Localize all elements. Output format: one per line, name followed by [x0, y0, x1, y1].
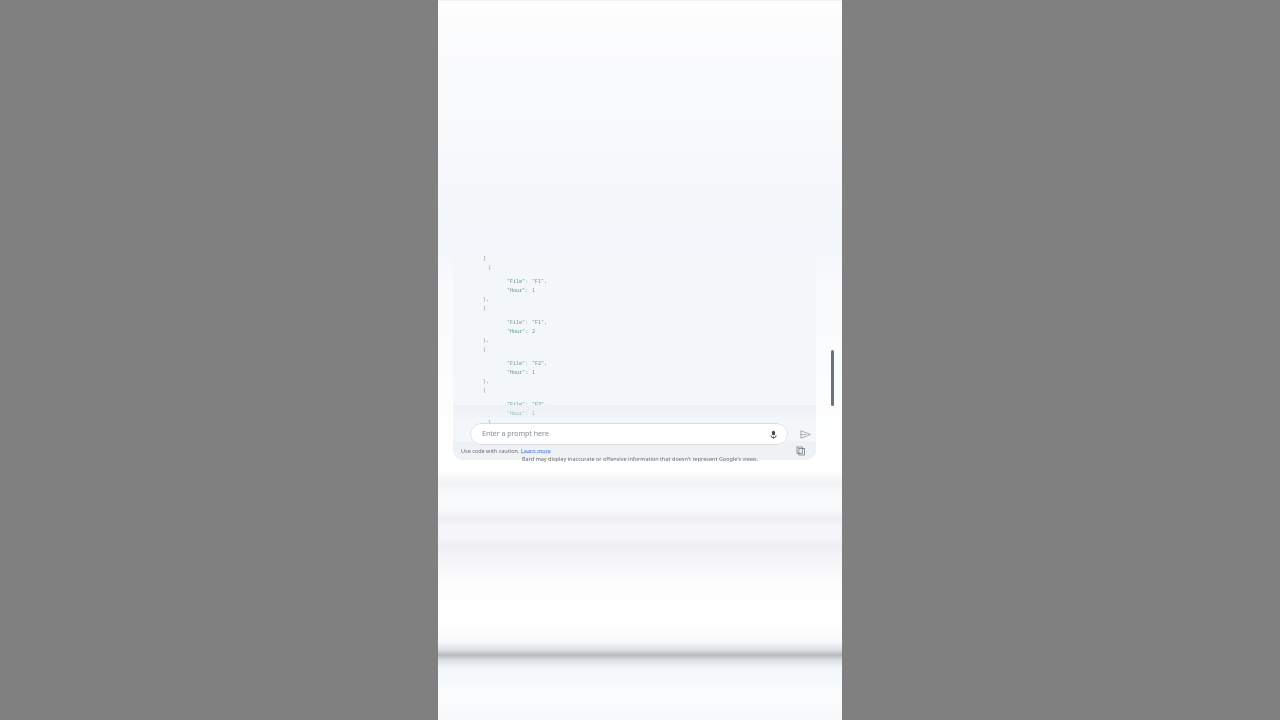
- staticText: "File":: [507, 401, 532, 408]
- button[interactable]: [: [453, 250, 816, 460]
- staticText: {: [483, 387, 487, 394]
- staticText: Learn more: [521, 447, 551, 454]
- staticText: 1: [532, 287, 536, 294]
- staticText: {: [483, 346, 487, 353]
- button[interactable]: Enter a prompt here: [470, 423, 788, 445]
- staticText: "Hour":: [507, 287, 532, 294]
- staticText: Enter a prompt here: [482, 429, 549, 439]
- button[interactable]: Learn more: [521, 447, 551, 454]
- staticText: 1: [532, 410, 536, 417]
- staticText: },: [483, 337, 490, 344]
- staticText: {: [483, 305, 487, 312]
- staticText: 1: [532, 369, 536, 376]
- staticText: "Hour":: [507, 410, 532, 417]
- staticText: 2: [532, 328, 536, 335]
- staticText: Bard may display inaccurate or offensive…: [522, 455, 759, 462]
- staticText: },: [483, 378, 490, 385]
- button[interactable]: Copy code: [794, 444, 808, 458]
- staticText: }: [488, 419, 492, 426]
- staticText: },: [483, 296, 490, 303]
- staticText: {: [488, 264, 492, 271]
- staticText: "F3",: [532, 401, 548, 408]
- button[interactable]: Send: [796, 425, 814, 443]
- staticText: "Hour":: [507, 328, 532, 335]
- staticText: "File":: [507, 360, 532, 367]
- staticText: "File":: [507, 319, 532, 326]
- staticText: "File":: [507, 278, 532, 285]
- staticText: "F1",: [532, 319, 548, 326]
- staticText: [: [483, 255, 487, 262]
- staticText: "F2",: [532, 360, 548, 367]
- staticText: ]: [483, 428, 487, 435]
- button[interactable]: Voice input: [766, 427, 780, 441]
- staticText: "F1",: [532, 278, 548, 285]
- staticText: "Hour":: [507, 369, 532, 376]
- staticText: Use code with caution.: [461, 447, 521, 454]
